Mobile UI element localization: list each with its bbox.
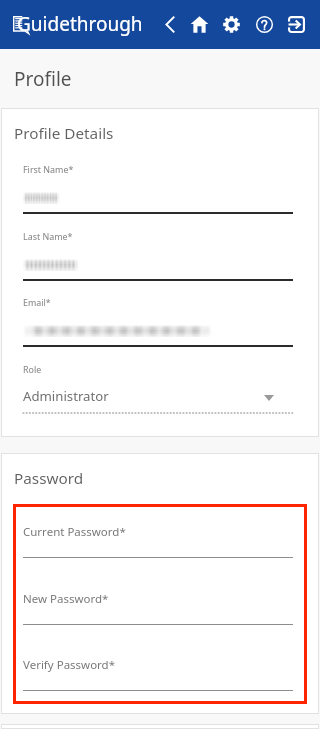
staticText: Email*: [23, 296, 51, 308]
staticText: Current Password*: [23, 524, 126, 540]
staticText: New Password*: [23, 591, 109, 607]
staticText: Password: [14, 468, 84, 489]
button[interactable]: Help: [249, 5, 279, 44]
staticText: Guidethrough: [17, 11, 143, 37]
staticText: Role: [23, 363, 42, 375]
button[interactable]: Home: [184, 5, 214, 44]
button[interactable]: Back: [155, 5, 185, 44]
staticText: Profile Details: [14, 123, 114, 144]
staticText: First Name*: [23, 163, 74, 175]
button[interactable]: Log out: [281, 5, 311, 44]
staticText: Administrator: [23, 387, 109, 405]
button[interactable]: Settings: [216, 5, 246, 44]
staticText: Verify Password*: [23, 657, 116, 673]
button[interactable]: Role: [1, 361, 319, 416]
staticText: Profile: [14, 66, 72, 92]
staticText: Last Name*: [23, 230, 73, 242]
button[interactable]: Guidethrough home: [13, 0, 155, 49]
